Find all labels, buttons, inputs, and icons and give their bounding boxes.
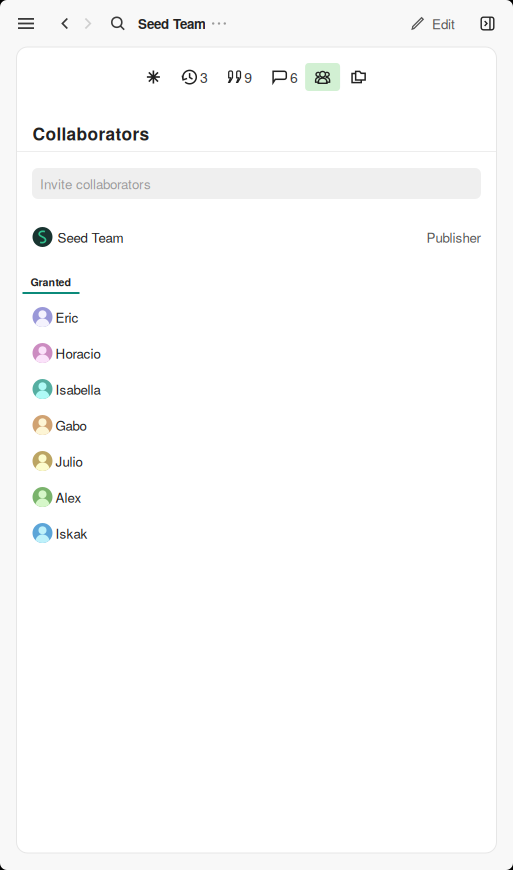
button[interactable]: Gabo [16, 407, 496, 443]
button[interactable]: Eric [16, 299, 496, 335]
staticText: Publisher [426, 227, 480, 247]
button[interactable]: 6 [272, 63, 298, 91]
staticText: 3 [200, 67, 208, 87]
button[interactable]: Iskak [16, 515, 496, 551]
staticText: Gabo [55, 415, 86, 435]
button[interactable]: Menu [9, 4, 43, 42]
staticText: Iskak [55, 523, 87, 543]
staticText: Horacio [55, 343, 100, 363]
button[interactable]: Forward [80, 4, 96, 42]
staticText: Isabella [55, 379, 100, 399]
staticText: Invite collaborators [40, 174, 151, 193]
button[interactable]: Collaborators [305, 63, 340, 91]
staticText: Alex [55, 487, 81, 507]
button[interactable]: Highlights [147, 63, 160, 91]
button[interactable]: 9 [228, 63, 252, 91]
button[interactable]: Julio [16, 443, 496, 479]
staticText: Seed Team [57, 227, 123, 247]
button[interactable]: 3 [182, 63, 208, 91]
staticText: 9 [244, 67, 252, 87]
button[interactable]: Files [351, 63, 366, 91]
button[interactable]: Seed Team [135, 4, 209, 42]
button[interactable]: Toggle sidebar [480, 4, 495, 42]
staticText: Collaborators [32, 121, 149, 146]
button[interactable]: Isabella [16, 371, 496, 407]
staticText: Granted [30, 274, 71, 290]
button[interactable]: Alex [16, 479, 496, 515]
button[interactable]: Edit [412, 4, 455, 42]
button[interactable]: Back [57, 4, 73, 42]
button[interactable]: Granted [22, 272, 79, 294]
staticText: Seed Team [138, 14, 206, 33]
staticText: Edit [432, 14, 455, 33]
staticText: Julio [55, 451, 82, 471]
button[interactable]: Horacio [16, 335, 496, 371]
staticText: 6 [290, 67, 298, 87]
button[interactable]: Search [108, 4, 128, 42]
button[interactable]: More options [211, 4, 227, 42]
staticText: Eric [55, 307, 78, 327]
